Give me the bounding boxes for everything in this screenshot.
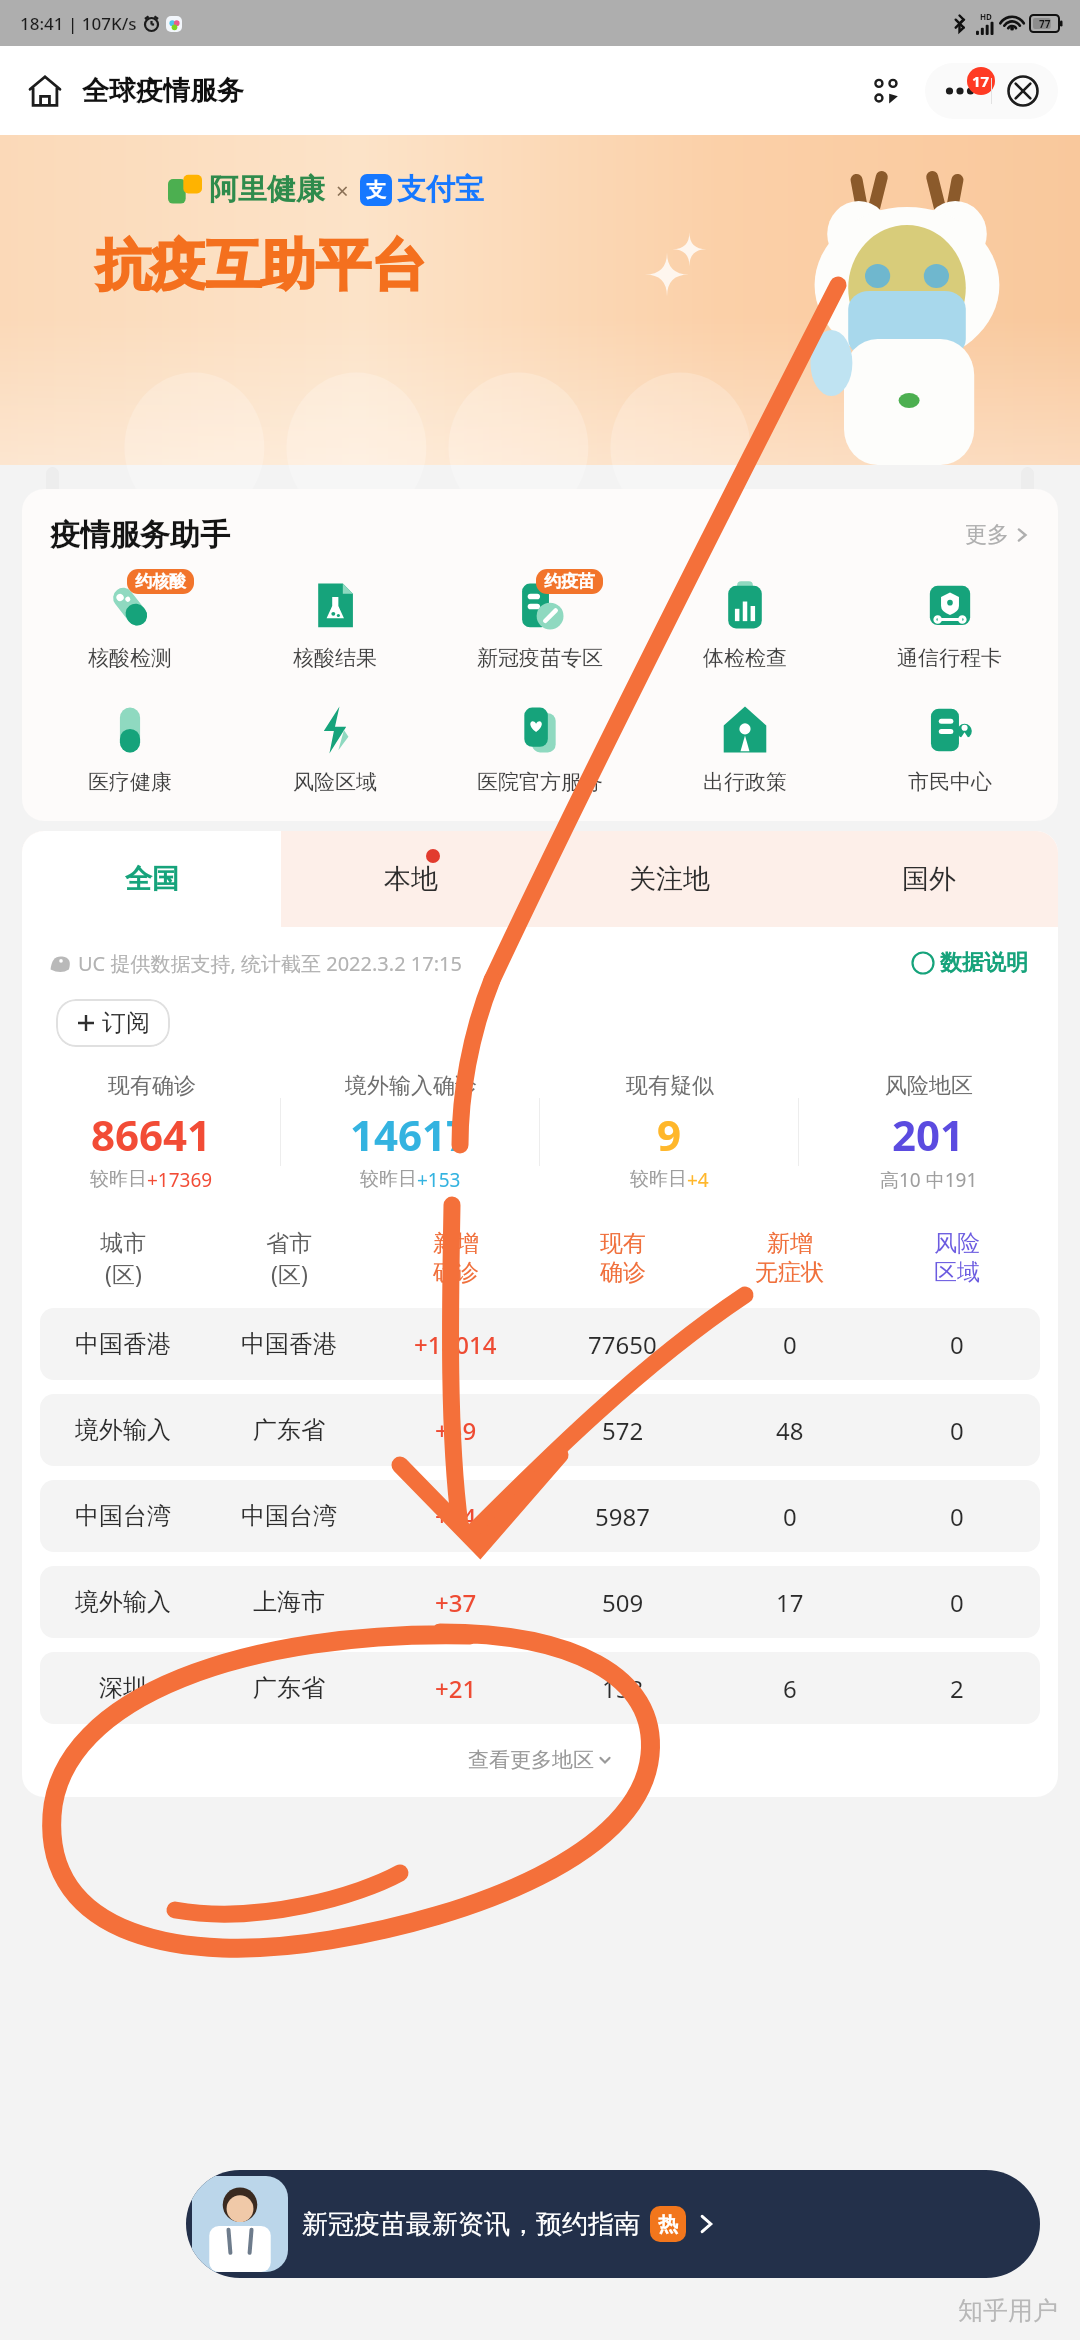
- staticText: 约疫苗: [544, 571, 595, 592]
- staticText: +21: [435, 1672, 477, 1705]
- staticText: 较昨日: [90, 1167, 147, 1191]
- staticText: 201: [892, 1106, 965, 1163]
- staticText: 本地: [384, 862, 438, 896]
- staticText: 风险区域: [293, 769, 377, 795]
- staticText: HD: [980, 11, 992, 22]
- button[interactable]: 深圳: [40, 1652, 1040, 1724]
- staticText: 境外输入: [75, 1415, 171, 1445]
- button[interactable]: 境外输入: [40, 1394, 1040, 1466]
- staticText: +153: [417, 1167, 461, 1193]
- staticText: 医院官方服务: [477, 769, 603, 795]
- button[interactable]: More: [929, 63, 991, 119]
- staticText: 0: [950, 1586, 964, 1619]
- button[interactable]: Scan: [855, 65, 917, 117]
- staticText: 区域: [934, 1258, 980, 1287]
- button[interactable]: 出行政策: [642, 693, 847, 799]
- button[interactable]: 数据说明: [907, 945, 1032, 981]
- staticText: 疫情服务助手: [50, 516, 230, 554]
- staticText: UC 提供数据支持, 统计截至 2022.3.2 17:15: [78, 950, 462, 977]
- staticText: 关注地: [629, 862, 710, 896]
- staticText: 约核酸: [135, 571, 186, 592]
- button[interactable]: 约核酸: [28, 569, 232, 675]
- staticText: 高10 中191: [880, 1167, 978, 1193]
- button[interactable]: 国外: [799, 831, 1058, 927]
- staticText: 确诊: [600, 1258, 646, 1287]
- staticText: 全国: [125, 862, 179, 896]
- button[interactable]: 全国: [22, 831, 281, 927]
- button[interactable]: 本地: [281, 831, 540, 927]
- button[interactable]: 通信行程卡: [847, 569, 1052, 675]
- button[interactable]: 核酸结果: [232, 569, 437, 675]
- staticText: ×: [336, 175, 349, 205]
- staticText: 上海市: [253, 1587, 325, 1617]
- button[interactable]: 订阅: [56, 999, 170, 1047]
- staticText: 现有确诊: [108, 1072, 196, 1100]
- staticText: 2: [950, 1672, 964, 1705]
- button[interactable]: 风险区域: [232, 693, 437, 799]
- staticText: 风险: [934, 1229, 980, 1258]
- staticText: 通信行程卡: [897, 645, 1002, 671]
- staticText: 5987: [595, 1500, 650, 1533]
- staticText: 9: [657, 1106, 682, 1163]
- staticText: 现有疑似: [626, 1072, 714, 1100]
- button[interactable]: 医院官方服务: [437, 693, 642, 799]
- staticText: 0: [783, 1500, 797, 1533]
- button[interactable]: 市民中心: [847, 693, 1052, 799]
- staticText: 全球疫情服务: [82, 74, 244, 108]
- staticText: 新增: [767, 1229, 813, 1258]
- button[interactable]: 体检检查: [642, 569, 847, 675]
- staticText: 77650: [588, 1328, 657, 1361]
- staticText: 出行政策: [703, 769, 787, 795]
- staticText: 阿里健康: [209, 171, 325, 208]
- staticText: 热: [658, 2212, 678, 2237]
- staticText: 0: [783, 1328, 797, 1361]
- button[interactable]: 中国台湾: [40, 1480, 1040, 1552]
- staticText: 确诊: [433, 1258, 479, 1287]
- staticText: 支付宝: [397, 171, 484, 208]
- staticText: 中国香港: [75, 1329, 171, 1359]
- staticText: (区): [271, 1258, 308, 1289]
- staticText: 数据说明: [940, 949, 1028, 977]
- staticText: 158: [602, 1672, 644, 1705]
- staticText: 0: [950, 1328, 964, 1361]
- staticText: 572: [602, 1414, 644, 1447]
- button[interactable]: 更多: [959, 515, 1036, 555]
- staticText: 无症状: [755, 1258, 824, 1287]
- staticText: 国外: [902, 862, 956, 896]
- staticText: 0: [950, 1414, 964, 1447]
- staticText: 境外输入确诊: [345, 1072, 477, 1100]
- staticText: 广东省: [253, 1415, 325, 1445]
- button[interactable]: 关注地: [540, 831, 799, 927]
- staticText: 核酸检测: [88, 645, 172, 671]
- staticText: 省市: [266, 1229, 312, 1258]
- staticText: 知乎用户: [958, 2295, 1058, 2326]
- button[interactable]: Home: [24, 70, 66, 112]
- staticText: +4: [687, 1167, 709, 1193]
- button[interactable]: 查看更多地区: [462, 1741, 618, 1779]
- staticText: 订阅: [102, 1008, 150, 1038]
- staticText: 核酸结果: [293, 645, 377, 671]
- staticText: 医疗健康: [88, 769, 172, 795]
- button[interactable]: 中国香港: [40, 1308, 1040, 1380]
- button[interactable]: Close: [992, 63, 1054, 119]
- staticText: 中国台湾: [241, 1501, 337, 1531]
- staticText: 17: [972, 71, 990, 91]
- staticText: 18:41 | 107K/s: [20, 12, 137, 35]
- staticText: +18014: [414, 1328, 497, 1361]
- staticText: 查看更多地区: [468, 1747, 594, 1773]
- staticText: +44: [435, 1500, 477, 1533]
- button[interactable]: 约疫苗: [437, 569, 642, 675]
- button[interactable]: 新冠疫苗最新资讯，预约指南: [186, 2170, 1040, 2278]
- staticText: 城市: [100, 1229, 146, 1258]
- button[interactable]: 医疗健康: [28, 693, 232, 799]
- button[interactable]: 境外输入: [40, 1566, 1040, 1638]
- staticText: 17: [776, 1586, 804, 1619]
- staticText: 深圳: [99, 1673, 147, 1703]
- staticText: 新冠疫苗最新资讯，预约指南: [302, 2208, 640, 2241]
- staticText: 新增: [433, 1229, 479, 1258]
- staticText: 境外输入: [75, 1587, 171, 1617]
- staticText: 中国香港: [241, 1329, 337, 1359]
- staticText: +59: [435, 1414, 477, 1447]
- staticText: 77: [1039, 17, 1051, 31]
- staticText: 广东省: [253, 1673, 325, 1703]
